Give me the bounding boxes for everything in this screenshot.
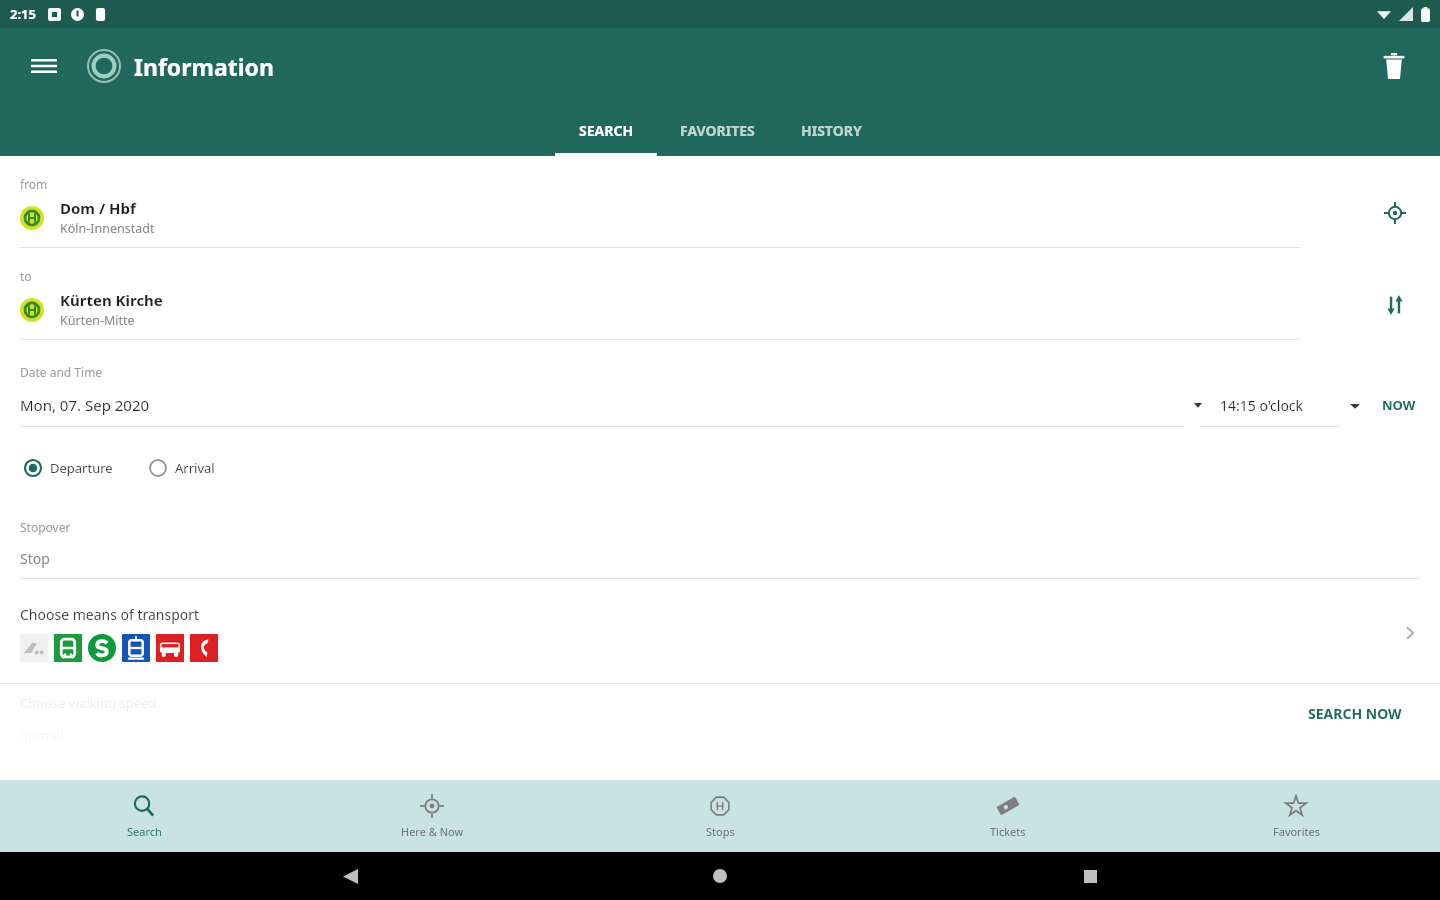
button[interactable]: FAVORITES (657, 104, 777, 156)
button[interactable]: Home (700, 856, 740, 896)
staticText: SEARCH (579, 121, 634, 140)
staticText: from (20, 176, 48, 192)
staticText: Mon, 07. Sep 2020 (20, 395, 150, 415)
button[interactable]: Use current location (1350, 176, 1440, 250)
button[interactable]: Departure (20, 455, 117, 481)
button[interactable]: Delete (1370, 42, 1418, 90)
staticText: 14:15 o'clock (1220, 396, 1304, 415)
button[interactable]: Mon, 07. Sep 2020 (20, 395, 1204, 415)
button[interactable]: Stops (576, 780, 864, 852)
staticText: Dom / Hbf (60, 198, 136, 218)
button[interactable]: Choose means of transport (0, 603, 1440, 663)
button[interactable]: Tickets (864, 780, 1152, 852)
staticText: Date and Time (20, 364, 103, 380)
staticText: normal (20, 726, 65, 742)
staticText: Arrival (175, 459, 215, 477)
button[interactable]: Open navigation menu (22, 44, 66, 88)
button[interactable]: 14:15 o'clock (1220, 396, 1360, 415)
other: Edit means of transport (1380, 603, 1440, 663)
button[interactable]: from (20, 176, 1350, 248)
staticText: Favorites (1273, 824, 1320, 839)
staticText: NOW (1382, 396, 1416, 414)
button[interactable]: Search (0, 780, 288, 852)
button[interactable]: HISTORY (777, 104, 885, 156)
staticText: Choose walking speed (20, 694, 157, 712)
button[interactable]: to (20, 268, 1350, 340)
button[interactable]: Stopover (20, 519, 1420, 579)
staticText: Stopover (20, 519, 71, 535)
staticText: Stops (706, 824, 735, 839)
staticText: SEARCH NOW (1308, 704, 1402, 723)
staticText: Choose means of transport (20, 605, 200, 624)
staticText: Departure (50, 459, 113, 477)
button[interactable]: Here & Now (288, 780, 576, 852)
staticText: HISTORY (801, 121, 862, 140)
staticText: Kürten-Mitte (60, 312, 135, 329)
staticText: Here & Now (401, 824, 464, 839)
button[interactable]: Swap origin and destination (1350, 268, 1440, 342)
button[interactable]: Recent apps (1070, 856, 1110, 896)
staticText: Tickets (990, 824, 1026, 839)
button[interactable]: Arrival (145, 455, 219, 481)
button[interactable]: Back (330, 856, 370, 896)
button[interactable]: SEARCH (555, 104, 657, 156)
staticText: 2:15 (10, 5, 36, 23)
staticText: Search (127, 824, 162, 839)
staticText: Kürten Kirche (60, 290, 163, 310)
staticText: to (20, 268, 32, 284)
button[interactable]: SEARCH NOW (1298, 696, 1412, 731)
button[interactable]: Favorites (1152, 780, 1440, 852)
staticText: Köln-Innenstadt (60, 220, 155, 237)
button[interactable]: NOW (1378, 392, 1420, 418)
staticText: Stop (20, 549, 50, 568)
staticText: FAVORITES (680, 121, 755, 140)
staticText: Information (134, 51, 274, 82)
